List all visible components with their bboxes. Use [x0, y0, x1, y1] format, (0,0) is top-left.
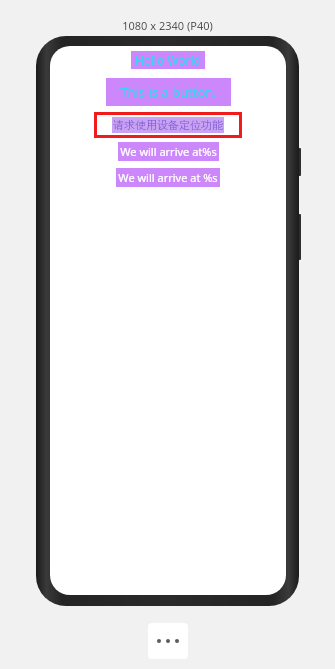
button[interactable]: We will arrive at %s	[116, 168, 220, 187]
staticText: 请求使用设备定位功能	[113, 118, 223, 132]
button[interactable]: More options	[148, 623, 188, 659]
button[interactable]: Hello World	[131, 51, 205, 69]
button[interactable]: This is a button.	[106, 78, 231, 106]
other: Power button	[297, 214, 301, 260]
button[interactable]: We will arrive at%s	[118, 142, 219, 161]
staticText: This is a button.	[120, 83, 217, 101]
staticText: We will arrive at%s	[120, 144, 217, 159]
staticText: We will arrive at %s	[118, 170, 218, 185]
button[interactable]: 请求使用设备定位功能	[94, 112, 242, 138]
other: Volume button	[297, 148, 301, 176]
staticText: 1080 x 2340 (P40)	[122, 18, 213, 33]
staticText: Hello World	[135, 52, 201, 68]
